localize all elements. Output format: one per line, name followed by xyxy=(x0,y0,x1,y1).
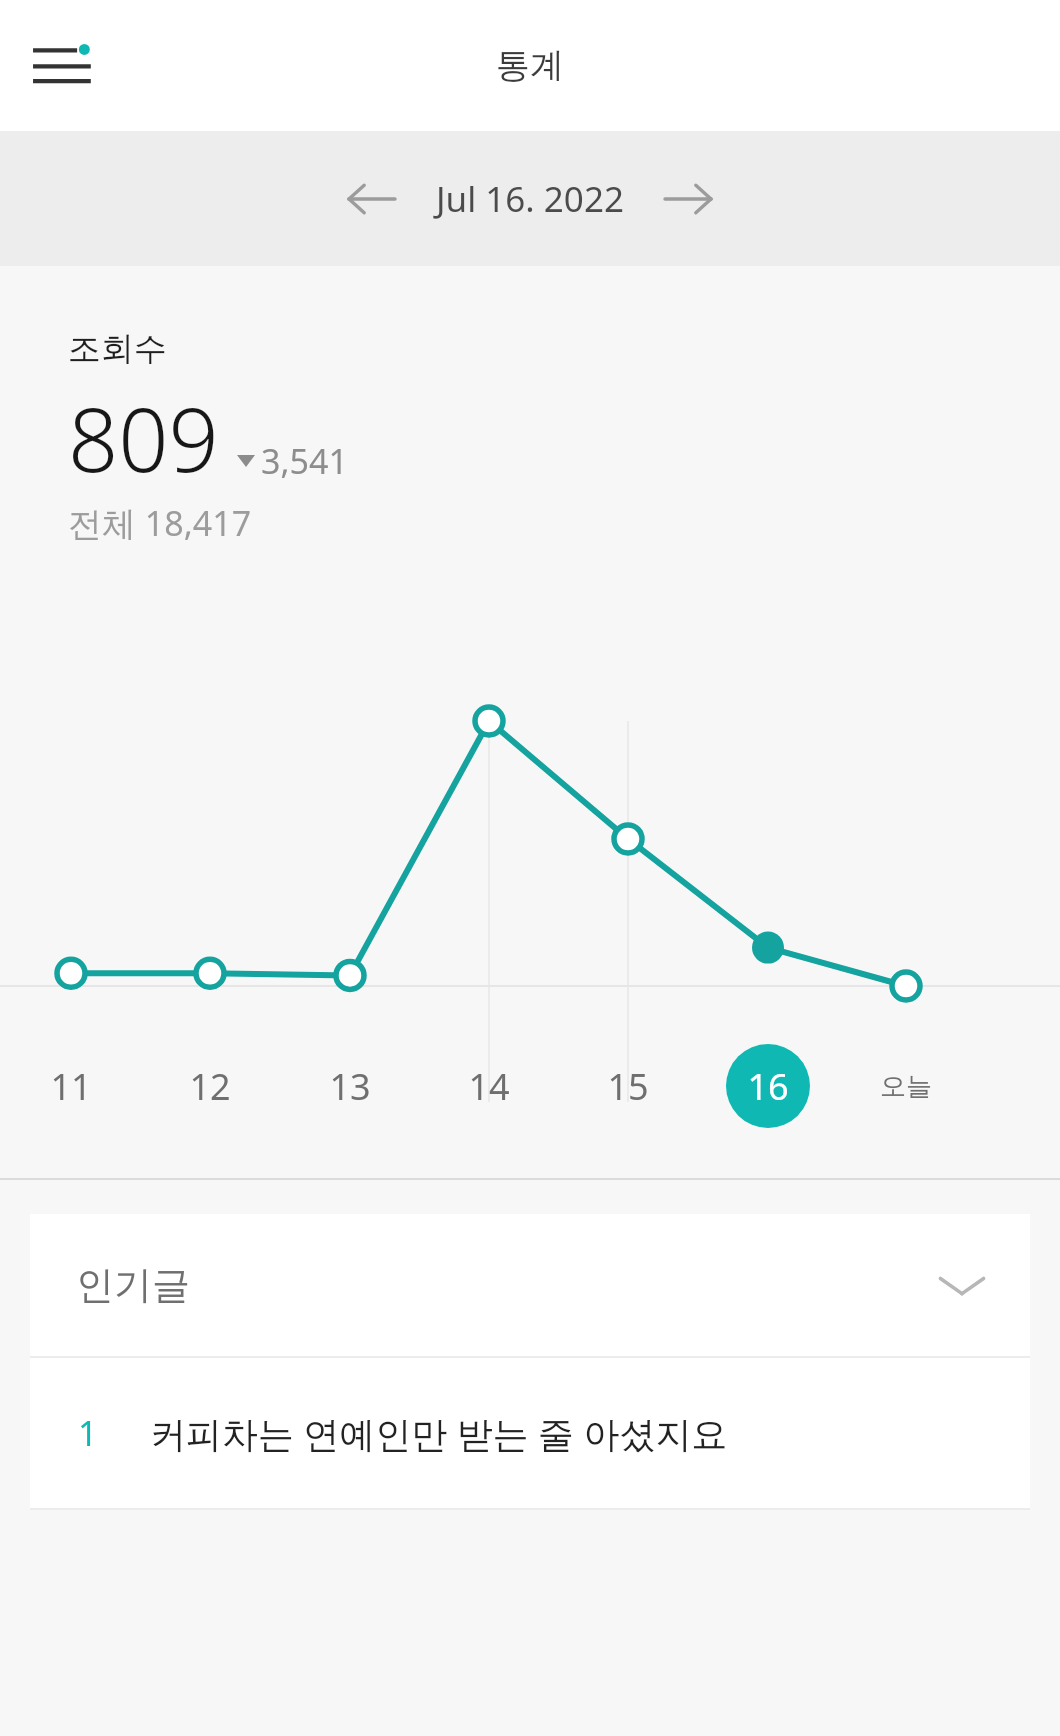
staticText: 1 xyxy=(78,1410,98,1456)
button[interactable]: 12 xyxy=(155,1031,265,1141)
staticText: 809 xyxy=(68,378,219,498)
button[interactable]: 15 xyxy=(573,1031,683,1141)
staticText: 15 xyxy=(607,1062,649,1111)
button[interactable]: Menu xyxy=(30,28,106,104)
staticText: 통계 xyxy=(496,44,564,87)
button[interactable]: 13 xyxy=(295,1031,405,1141)
button[interactable]: Previous day xyxy=(334,161,410,237)
button[interactable]: 16 xyxy=(713,1031,823,1141)
staticText: 14 xyxy=(468,1062,510,1111)
staticText: 커피차는 연예인만 받는 줄 아셨지요 xyxy=(150,1409,728,1458)
other: Collapse xyxy=(930,1253,994,1317)
button[interactable]: 11 xyxy=(16,1031,126,1141)
staticText: 전체 18,417 xyxy=(68,500,252,546)
staticText: 인기글 xyxy=(76,1261,190,1309)
staticText: 16 xyxy=(747,1062,789,1111)
staticText: 오늘 xyxy=(880,1070,932,1103)
staticText: 13 xyxy=(329,1062,371,1111)
button[interactable]: Next day xyxy=(650,161,726,237)
staticText: 조회수 xyxy=(68,328,167,370)
staticText: 12 xyxy=(189,1062,231,1111)
button[interactable]: 1 xyxy=(30,1358,1030,1508)
button[interactable]: 14 xyxy=(434,1031,544,1141)
button[interactable]: 오늘 xyxy=(851,1031,961,1141)
staticText: Jul 16. 2022 xyxy=(436,175,624,223)
staticText: 3,541 xyxy=(261,438,348,484)
staticText: 11 xyxy=(50,1062,92,1111)
button[interactable]: 인기글 xyxy=(30,1214,1030,1356)
